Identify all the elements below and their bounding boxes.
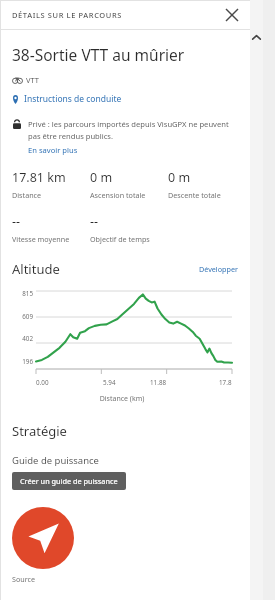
button[interactable]: Créer un guide de puissance	[12, 472, 126, 490]
staticText: 5.94	[103, 378, 116, 387]
staticText: Distance	[12, 190, 42, 200]
staticText: 815	[12, 289, 33, 298]
staticText: Instructions de conduite	[24, 93, 122, 105]
staticText: 402	[12, 334, 33, 343]
staticText: 0 m	[168, 169, 191, 186]
staticText: Développer	[199, 264, 238, 274]
staticText: 0.00	[36, 378, 49, 387]
staticText: Guide de puissance	[12, 454, 99, 467]
button[interactable]: Instructions de conduite	[12, 93, 122, 105]
staticText: 11.88	[150, 378, 167, 387]
staticText: 17.81 km	[12, 169, 66, 186]
staticText: VTT	[26, 75, 39, 85]
staticText: --	[12, 213, 21, 230]
button[interactable]: Source	[12, 507, 74, 569]
staticText: 38-Sortie VTT au mûrier	[12, 44, 185, 65]
staticText: 17.8	[219, 378, 232, 387]
button[interactable]: Fermer	[222, 5, 242, 25]
button[interactable]: En savoir plus	[28, 145, 78, 155]
staticText: En savoir plus	[28, 145, 78, 155]
staticText: Privé : les parcours importés depuis Vis…	[28, 119, 240, 142]
other: Scroll up	[251, 33, 262, 42]
button[interactable]: Développer	[199, 264, 238, 274]
staticText: Créer un guide de puissance	[20, 476, 118, 486]
staticText: Vitesse moyenne	[12, 234, 70, 244]
staticText: 196	[12, 357, 33, 366]
staticText: Stratégie	[12, 422, 67, 440]
staticText: DÉTAILS SUR LE PARCOURS	[12, 10, 123, 20]
staticText: Descente totale	[168, 190, 221, 200]
staticText: Objectif de temps	[90, 234, 150, 244]
staticText: Altitude	[12, 260, 60, 278]
staticText: Source	[12, 574, 36, 584]
staticText: --	[90, 213, 99, 230]
staticText: Ascension totale	[90, 190, 146, 200]
staticText: Distance (km)	[12, 394, 232, 404]
staticText: 609	[12, 312, 33, 321]
staticText: 0 m	[90, 169, 113, 186]
